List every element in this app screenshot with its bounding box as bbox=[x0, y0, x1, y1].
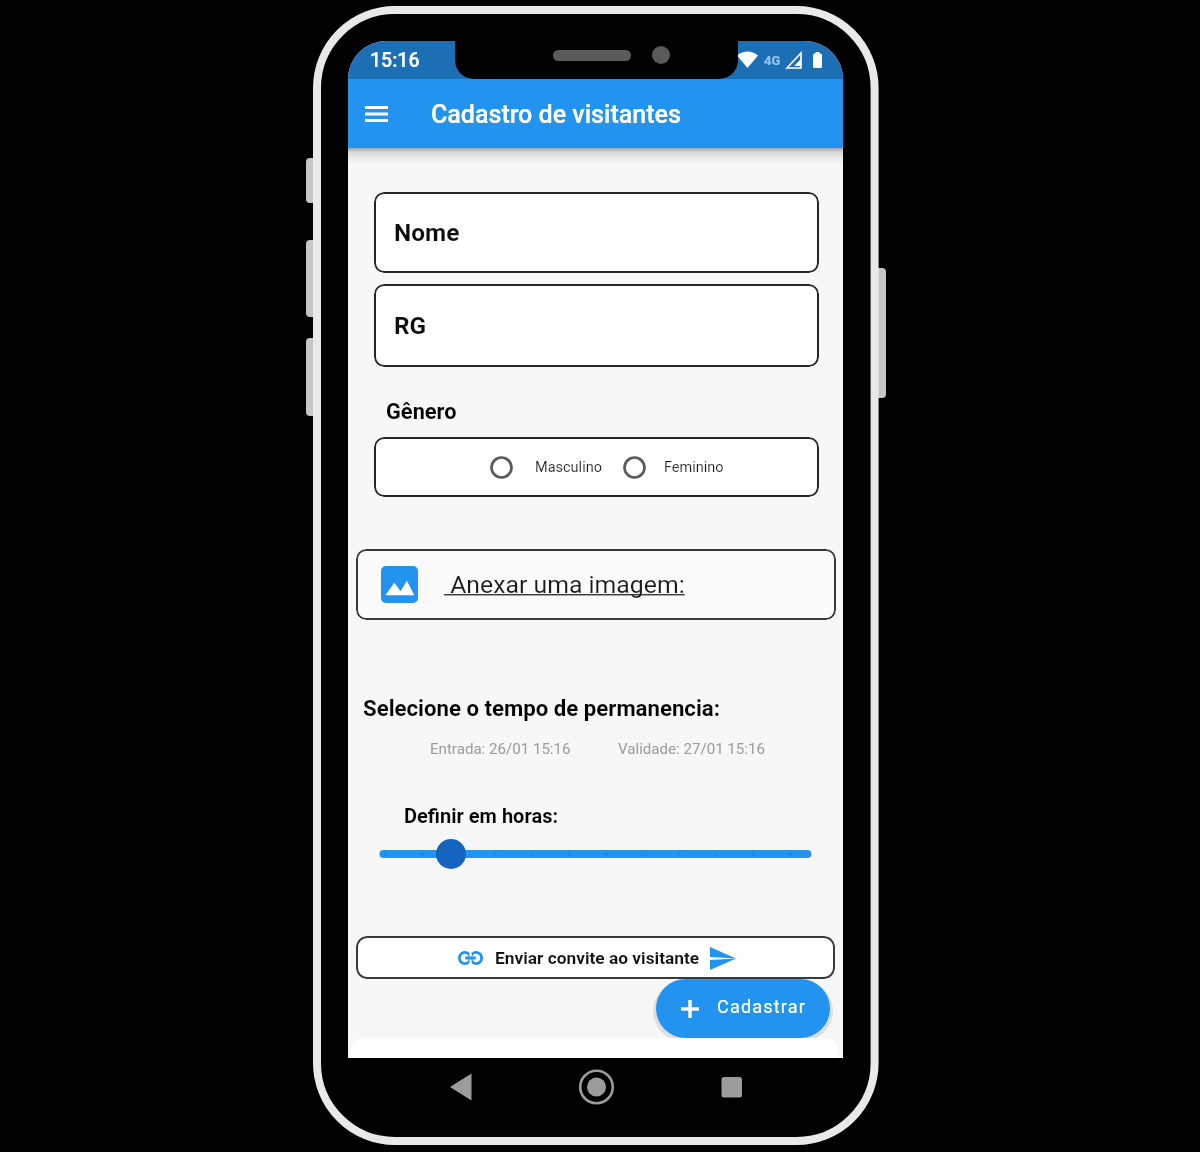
button[interactable]: Cadastrar bbox=[656, 979, 830, 1038]
staticText: Enviar convite ao visitante bbox=[495, 948, 700, 968]
staticText: Validade: 27/01 15:16 bbox=[618, 740, 765, 758]
staticText: Masculino bbox=[535, 459, 602, 476]
button[interactable]: Definir em horas bbox=[368, 834, 823, 874]
staticText: Selecione o tempo de permanencia: bbox=[363, 695, 720, 721]
staticText: Cadastro de visitantes bbox=[431, 100, 681, 129]
button[interactable]: RG bbox=[374, 284, 819, 367]
button[interactable]: Enviar convite ao visitante bbox=[356, 936, 835, 979]
staticText: 4G bbox=[764, 53, 781, 68]
button[interactable]: Feminino bbox=[623, 446, 724, 488]
staticText: Nome bbox=[394, 218, 460, 247]
staticText: Entrada: 26/01 15:16 bbox=[430, 740, 571, 758]
staticText: Feminino bbox=[664, 459, 724, 476]
button[interactable]: Nome bbox=[374, 192, 819, 273]
staticText: Definir em horas: bbox=[404, 804, 559, 827]
staticText: RG bbox=[394, 311, 427, 340]
staticText: Gênero bbox=[386, 399, 457, 425]
staticText: Cadastrar bbox=[717, 996, 807, 1017]
staticText: 15:16 bbox=[370, 49, 420, 72]
button[interactable]: Anexar uma imagem: bbox=[356, 549, 836, 620]
button[interactable]: Masculino bbox=[490, 446, 602, 488]
button[interactable]: Menu bbox=[355, 93, 397, 135]
staticText: Anexar uma imagem: bbox=[444, 570, 685, 599]
